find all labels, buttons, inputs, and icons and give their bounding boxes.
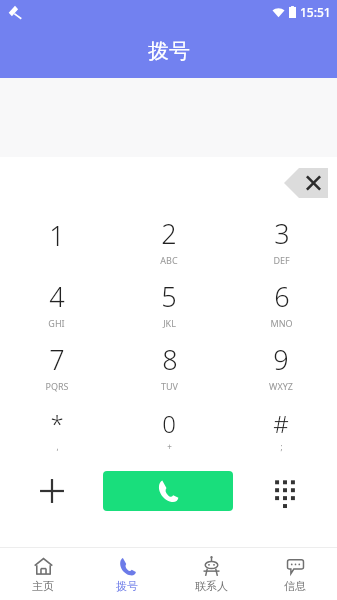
staticText: 拨号 <box>116 579 138 593</box>
staticText: 拨号 <box>148 38 190 64</box>
staticText: 信息 <box>284 579 306 593</box>
button[interactable]: 1 <box>0 209 113 272</box>
button[interactable]: 9 <box>225 335 337 398</box>
staticText: MNO <box>270 317 293 329</box>
staticText: 4 <box>49 278 65 315</box>
button[interactable]: 0 <box>113 398 225 461</box>
staticText: WXYZ <box>269 380 293 392</box>
staticText: * <box>50 407 64 440</box>
staticText: 联系人 <box>195 579 228 593</box>
staticText: DEF <box>273 254 290 266</box>
button[interactable]: Add contact <box>0 461 103 521</box>
staticText: ABC <box>160 254 178 266</box>
staticText: 7 <box>49 341 65 378</box>
button[interactable]: 3 <box>225 209 337 272</box>
staticText: 9 <box>273 341 289 378</box>
button[interactable]: 拨号 <box>85 548 169 600</box>
button[interactable]: 5 <box>113 272 225 335</box>
staticText: 主页 <box>32 579 54 593</box>
button[interactable]: 联系人 <box>169 548 253 600</box>
button[interactable]: Delete <box>284 168 328 198</box>
button[interactable]: Call <box>103 471 233 511</box>
button[interactable]: Keypad <box>233 461 337 521</box>
button[interactable]: 7 <box>0 335 113 398</box>
staticText: 3 <box>274 215 290 252</box>
button[interactable]: 主页 <box>0 548 85 600</box>
staticText: GHI <box>48 317 65 329</box>
button[interactable]: * <box>0 398 113 461</box>
button[interactable]: 信息 <box>253 548 337 600</box>
button[interactable]: 2 <box>113 209 225 272</box>
staticText: # <box>273 407 289 440</box>
staticText: JKL <box>163 317 176 329</box>
button[interactable]: 4 <box>0 272 113 335</box>
staticText: 2 <box>161 215 177 252</box>
staticText: 8 <box>162 341 178 378</box>
staticText: PQRS <box>45 380 69 392</box>
staticText: 1 <box>49 217 65 254</box>
staticText: + <box>167 441 172 452</box>
staticText: ; <box>280 441 283 452</box>
button[interactable]: # <box>225 398 337 461</box>
staticText: 15:51 <box>300 4 331 20</box>
staticText: 0 <box>162 407 176 440</box>
staticText: 5 <box>161 278 177 315</box>
staticText: TUV <box>161 380 178 392</box>
button[interactable]: 6 <box>225 272 337 335</box>
staticText: , <box>56 441 59 452</box>
button[interactable]: 8 <box>113 335 225 398</box>
staticText: 6 <box>274 278 290 315</box>
